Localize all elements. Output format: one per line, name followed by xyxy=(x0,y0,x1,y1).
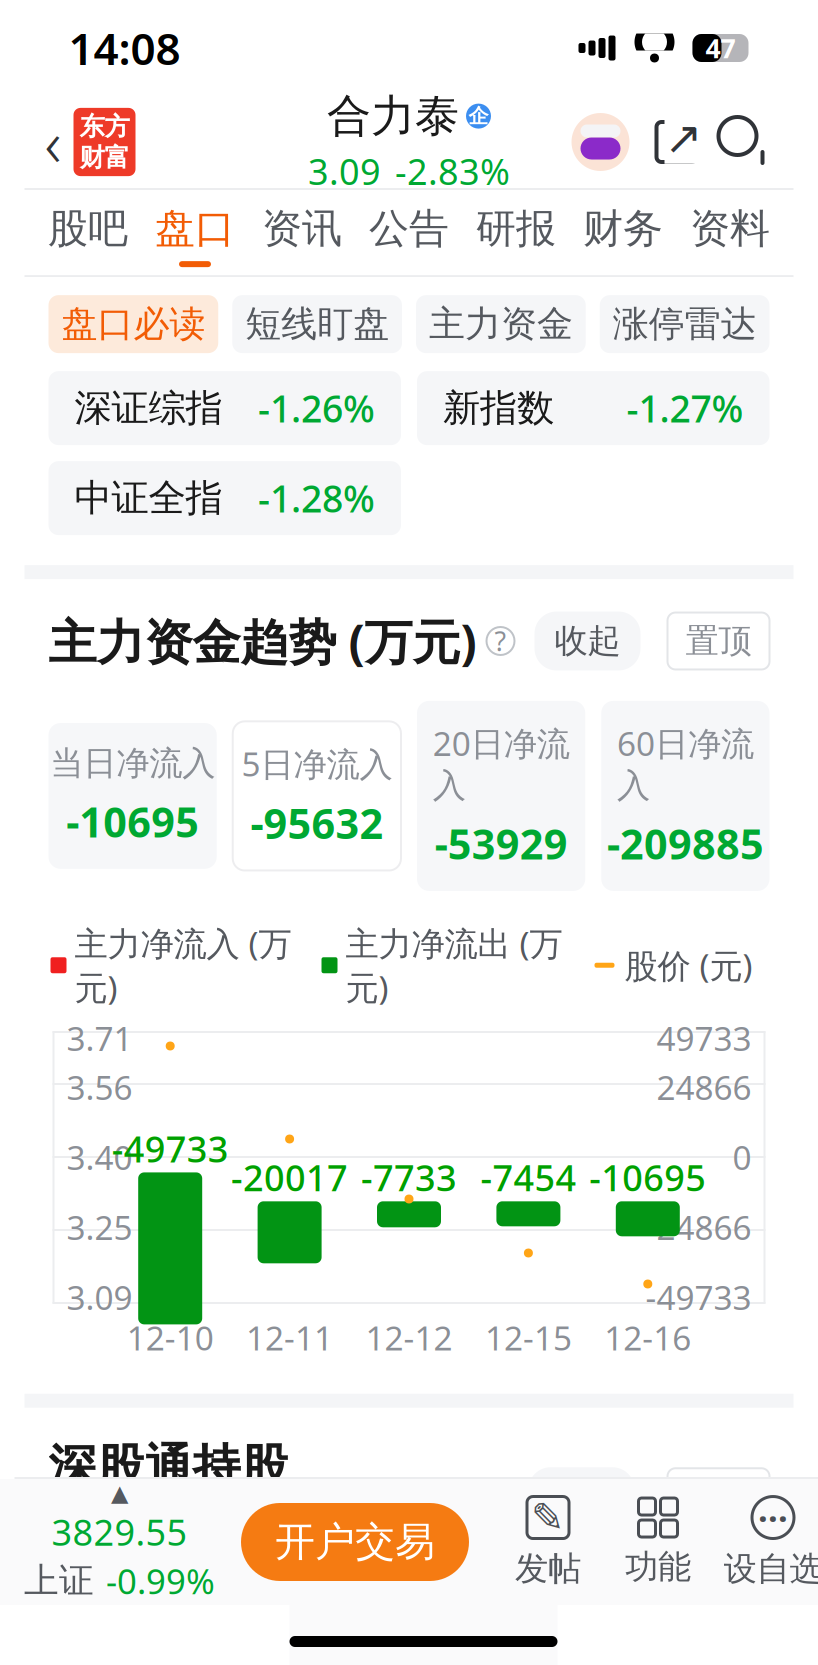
button[interactable]: 持仓变化 xyxy=(417,1582,769,1665)
button[interactable]: 置顶 xyxy=(667,1468,769,1525)
button[interactable]: 中证全指 xyxy=(48,461,401,535)
staticText: 3.56 xyxy=(66,1065,132,1109)
staticText: 主力资金趋势 (万元) xyxy=(48,609,476,673)
staticText: 涨停雷达 xyxy=(613,302,757,346)
staticText: 主力资金 xyxy=(429,302,573,346)
staticText: -20017 xyxy=(231,1153,348,1201)
button[interactable]: Back xyxy=(24,89,135,194)
button[interactable]: 收起 xyxy=(528,1467,634,1526)
staticText: 置顶 xyxy=(685,1476,751,1517)
button[interactable]: AI assistant xyxy=(563,113,637,171)
staticText: 12-15 xyxy=(485,1315,572,1360)
staticText: 股价 (元) xyxy=(624,943,752,987)
button[interactable]: 主力资金 xyxy=(416,295,586,353)
staticText: -2.83% xyxy=(395,147,510,195)
button[interactable]: Info xyxy=(476,627,520,655)
staticText: -10695 xyxy=(66,794,199,849)
staticText: 3829.55 xyxy=(51,1508,187,1556)
staticText: ? xyxy=(494,623,506,659)
staticText: 3.09 xyxy=(66,1275,132,1319)
staticText: 短线盯盘 xyxy=(245,302,389,346)
button[interactable]: 开户交易 xyxy=(241,1503,469,1581)
button[interactable]: 60日净流入 xyxy=(601,701,769,891)
staticText: ✎ xyxy=(531,1495,565,1540)
staticText: 12-11 xyxy=(246,1315,333,1360)
button[interactable]: 深证综指 xyxy=(48,371,401,445)
staticText: 2025-09-30 xyxy=(340,1475,514,1519)
staticText: -10695 xyxy=(589,1153,706,1201)
button[interactable]: ··· xyxy=(713,1494,818,1589)
button[interactable]: Info xyxy=(288,1483,332,1511)
staticText: 49733 xyxy=(656,1016,751,1060)
staticText: 中证全指 xyxy=(74,475,222,521)
staticText: 24866 xyxy=(656,1065,751,1109)
button[interactable]: 新指数 xyxy=(417,371,769,445)
staticText: 60日净流入 xyxy=(617,721,754,806)
button[interactable]: ✎ xyxy=(493,1495,603,1589)
staticText: 3.71 xyxy=(66,1016,132,1060)
staticText: 深证综指 xyxy=(74,385,222,431)
staticText: 研报 xyxy=(476,204,556,253)
staticText: 主力净流出 (万元) xyxy=(345,921,562,1009)
staticText: 股吧 xyxy=(48,204,128,253)
staticText: ▲ xyxy=(111,1480,128,1506)
staticText: 公告 xyxy=(369,204,449,253)
button[interactable]: 盘口 xyxy=(141,190,248,275)
staticText: ? xyxy=(306,1479,318,1514)
staticText: 持股比例 xyxy=(151,1608,299,1654)
button[interactable]: 资讯 xyxy=(248,190,355,275)
staticText: 上证 xyxy=(24,1559,94,1602)
staticText: -49733 xyxy=(112,1125,229,1172)
button[interactable]: ▲ xyxy=(0,1480,225,1604)
button[interactable]: 盘口必读 xyxy=(48,295,218,353)
staticText: 20日净流入 xyxy=(433,721,570,806)
staticText: 置顶 xyxy=(685,620,751,661)
staticText: -1.28% xyxy=(258,473,375,523)
button[interactable]: Search xyxy=(715,113,793,171)
button[interactable]: 短线盯盘 xyxy=(232,295,402,353)
button[interactable]: 资料 xyxy=(676,190,783,275)
staticText: 持仓变化 xyxy=(519,1608,667,1654)
button[interactable]: 置顶 xyxy=(667,612,769,669)
staticText: ‹ xyxy=(44,99,61,184)
staticText: 47 xyxy=(705,30,735,66)
staticText: -1.26% xyxy=(258,383,375,433)
staticText: 收起 xyxy=(554,620,620,661)
staticText: 发帖 xyxy=(515,1548,581,1589)
staticText: 3.25 xyxy=(66,1205,132,1249)
staticText: 收起 xyxy=(548,1476,614,1517)
staticText: 12-10 xyxy=(127,1315,214,1360)
staticText: 新指数 xyxy=(443,385,554,431)
button[interactable]: 收起 xyxy=(534,611,640,670)
button[interactable]: 财务 xyxy=(569,190,676,275)
staticText: 3.40 xyxy=(66,1135,132,1179)
button[interactable]: 股吧 xyxy=(34,190,141,275)
staticText: ↗ xyxy=(664,112,702,164)
staticText: 3.09 xyxy=(308,147,381,195)
staticText: 资讯 xyxy=(262,204,342,253)
staticText: 设自选 xyxy=(723,1548,818,1589)
staticText: 12-16 xyxy=(604,1315,691,1360)
staticText: -0.99% xyxy=(106,1558,215,1604)
button[interactable]: Share xyxy=(637,113,715,171)
button[interactable]: 涨停雷达 xyxy=(600,295,770,353)
staticText: -49733 xyxy=(645,1275,751,1319)
button[interactable]: 5日净流入 xyxy=(233,721,401,870)
staticText: 财富 xyxy=(79,142,129,173)
staticText: -1.27% xyxy=(626,383,743,433)
button[interactable]: 当日净流入 xyxy=(48,723,217,869)
staticText: 12-12 xyxy=(365,1315,452,1360)
staticText: 5日净流入 xyxy=(241,741,392,786)
staticText: -7733 xyxy=(361,1153,457,1201)
staticText: 盘口必读 xyxy=(61,302,205,346)
staticText: 合力泰 xyxy=(327,89,459,143)
staticText: 开户交易 xyxy=(275,1517,435,1566)
button[interactable]: 研报 xyxy=(462,190,569,275)
staticText: 盘口 xyxy=(155,204,235,253)
button[interactable]: 功能 xyxy=(603,1496,713,1587)
button[interactable]: 持股比例 xyxy=(48,1582,401,1665)
button[interactable]: 公告 xyxy=(355,190,462,275)
button[interactable]: 20日净流入 xyxy=(417,701,585,891)
staticText: -209885 xyxy=(607,816,764,871)
staticText: 财务 xyxy=(583,204,663,253)
